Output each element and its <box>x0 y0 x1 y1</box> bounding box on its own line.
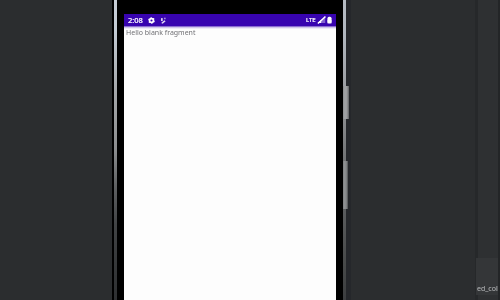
staticText: 2:08 <box>128 15 143 25</box>
button[interactable]: Settings <box>148 17 155 24</box>
staticText: Hello blank fragment <box>126 28 196 38</box>
staticText: LTE <box>306 16 316 24</box>
other: Mobile signal off <box>317 16 326 24</box>
button[interactable]: Screen recording <box>160 17 167 24</box>
other: Battery full <box>327 16 332 24</box>
staticText: ed_col <box>477 284 498 294</box>
